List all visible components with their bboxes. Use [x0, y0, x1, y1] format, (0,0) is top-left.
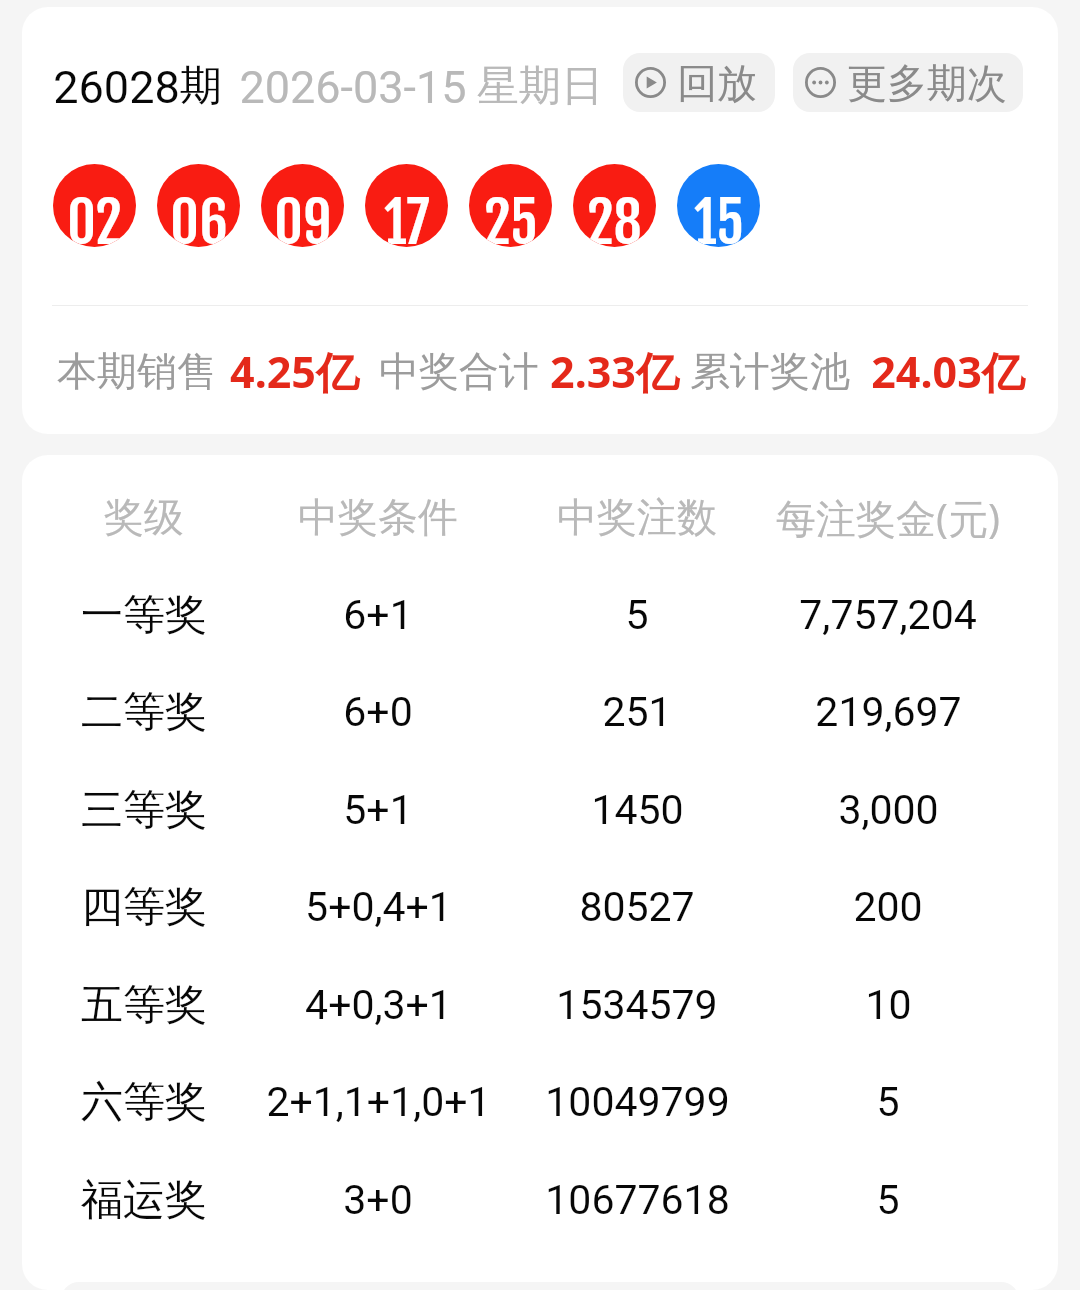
button[interactable]: 回放 — [623, 53, 775, 112]
staticText: 219,697 — [815, 688, 962, 736]
staticText: 本期销售 — [57, 346, 217, 396]
staticText: 中奖条件 — [298, 492, 458, 542]
staticText: 奖级 — [104, 492, 184, 542]
staticText: 五等奖 — [81, 979, 207, 1032]
staticText: 10049799 — [545, 1078, 730, 1126]
staticText: 10677618 — [545, 1176, 730, 1224]
staticText: 更多期次 — [847, 58, 1007, 108]
staticText: 2+1,1+1,0+1 — [266, 1078, 491, 1126]
staticText: 4.25亿 — [230, 342, 359, 401]
staticText: 5 — [625, 591, 649, 639]
staticText: 6+1 — [343, 591, 413, 639]
button[interactable]: 更多期次 — [793, 53, 1023, 112]
staticText: 中奖注数 — [557, 492, 717, 542]
staticText: 回放 — [677, 58, 757, 108]
staticText: 25 — [484, 188, 538, 247]
staticText: 06 — [170, 188, 228, 247]
staticText: 10 — [865, 981, 912, 1029]
staticText: 四等奖 — [81, 881, 207, 934]
staticText: 5+0,4+1 — [305, 883, 452, 931]
button[interactable]: 福运奖 — [22, 1152, 1058, 1249]
staticText: 星期日 — [477, 60, 603, 113]
staticText: 5 — [876, 1176, 900, 1224]
staticText: 5+1 — [343, 786, 413, 834]
button[interactable]: 六等奖 — [22, 1054, 1058, 1151]
button[interactable]: 一等奖 — [22, 567, 1058, 664]
button[interactable]: 三等奖 — [22, 762, 1058, 859]
staticText: 1534579 — [556, 981, 718, 1029]
staticText: 09 — [274, 188, 332, 247]
staticText: 每注奖金(元) — [776, 490, 1000, 545]
staticText: 福运奖 — [81, 1174, 207, 1227]
staticText: 28 — [587, 188, 642, 247]
staticText: 6+0 — [343, 688, 413, 736]
staticText: 二等奖 — [81, 686, 207, 739]
staticText: 200 — [853, 883, 923, 931]
staticText: 02 — [67, 188, 122, 247]
staticText: 期 — [180, 60, 222, 113]
staticText: 7,757,204 — [799, 591, 977, 639]
staticText: 三等奖 — [81, 784, 207, 837]
staticText: 六等奖 — [81, 1076, 207, 1129]
staticText: 1450 — [591, 786, 684, 834]
staticText: 17 — [384, 188, 430, 247]
staticText: 累计奖池 — [690, 346, 850, 396]
staticText: 26028 — [53, 61, 180, 114]
button[interactable]: 五等奖 — [22, 957, 1058, 1054]
staticText: 2.33亿 — [550, 342, 679, 401]
button[interactable]: 四等奖 — [22, 859, 1058, 956]
staticText: 15 — [694, 188, 744, 247]
staticText: 80527 — [579, 883, 695, 931]
button[interactable]: 二等奖 — [22, 664, 1058, 761]
staticText: 中奖合计 — [379, 346, 539, 396]
staticText: 24.03亿 — [871, 342, 1025, 401]
staticText: 3,000 — [838, 786, 939, 834]
staticText: 4+0,3+1 — [305, 981, 452, 1029]
button[interactable]: 开奖号码 02 06 09 17 25 28 15 — [53, 164, 760, 247]
staticText: 3+0 — [343, 1176, 413, 1224]
staticText: 一等奖 — [81, 589, 207, 642]
staticText: 2026-03-15 — [239, 61, 467, 114]
staticText: 5 — [876, 1078, 900, 1126]
staticText: 251 — [602, 688, 672, 736]
